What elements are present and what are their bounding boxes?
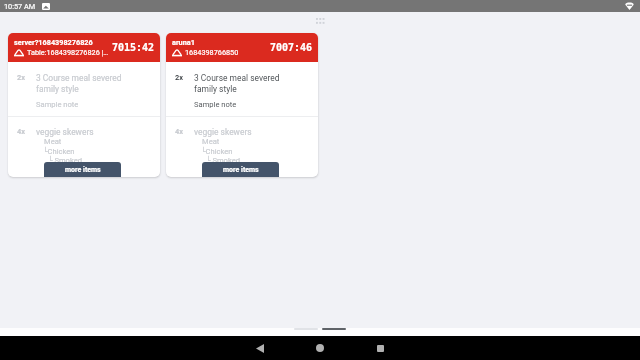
button[interactable]: Recent apps bbox=[350, 336, 410, 360]
staticText: 3 Course meal severed family style bbox=[194, 73, 289, 94]
staticText: more items bbox=[65, 166, 101, 174]
staticText: Sample note bbox=[194, 100, 237, 109]
staticText: └ Smoked bbox=[206, 156, 241, 165]
staticText: Meat bbox=[44, 137, 62, 146]
button[interactable]: more items bbox=[44, 162, 121, 177]
button[interactable]: more items bbox=[202, 162, 279, 177]
button[interactable]: Home bbox=[290, 336, 350, 360]
staticText: veggie skewers bbox=[36, 127, 94, 137]
staticText: Table:1684398276826 | ... bbox=[27, 48, 110, 57]
staticText: 7015:42 bbox=[112, 42, 155, 54]
button[interactable]: server?1684398276826 bbox=[8, 33, 160, 177]
staticText: veggie skewers bbox=[194, 127, 252, 137]
staticText: 4x bbox=[175, 127, 184, 136]
button[interactable]: aruna1 bbox=[166, 33, 318, 177]
staticText: 10:57 AM bbox=[4, 2, 36, 11]
button[interactable]: Back bbox=[230, 336, 290, 360]
staticText: 2x bbox=[175, 73, 184, 82]
staticText: └Chicken bbox=[43, 147, 75, 156]
staticText: server?1684398276826 bbox=[14, 38, 93, 47]
staticText: 2x bbox=[17, 73, 26, 82]
staticText: 1684398766850 bbox=[185, 48, 239, 57]
staticText: └Chicken bbox=[201, 147, 233, 156]
staticText: aruna1 bbox=[172, 38, 195, 47]
staticText: more items bbox=[223, 166, 259, 174]
staticText: └ Smoked bbox=[48, 156, 83, 165]
staticText: 7007:46 bbox=[270, 42, 313, 54]
staticText: Meat bbox=[202, 137, 220, 146]
button[interactable]: Page 2 bbox=[322, 328, 346, 330]
staticText: 3 Course meal severed family style bbox=[36, 73, 131, 94]
staticText: Sample note bbox=[36, 100, 79, 109]
staticText: 4x bbox=[17, 127, 26, 136]
